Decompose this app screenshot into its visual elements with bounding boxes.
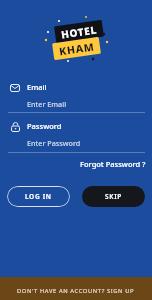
staticText: LOG IN xyxy=(25,192,52,201)
button[interactable]: Enter Email xyxy=(27,99,67,109)
staticText: SKIP xyxy=(105,192,122,201)
button[interactable]: Enter Password xyxy=(27,138,81,148)
staticText: KHAM xyxy=(58,39,96,58)
staticText: HOTEL xyxy=(60,23,98,41)
staticText: DON'T HAVE AN ACCOUNT? SIGN UP xyxy=(17,287,135,295)
button[interactable]: LOG IN xyxy=(7,186,70,207)
staticText: Email xyxy=(27,82,47,92)
button[interactable]: DON'T HAVE AN ACCOUNT? SIGN UP xyxy=(0,277,152,300)
staticText: Password xyxy=(27,121,62,131)
button[interactable]: Forgot Password ? xyxy=(80,159,146,169)
button[interactable]: SKIP xyxy=(82,186,145,207)
